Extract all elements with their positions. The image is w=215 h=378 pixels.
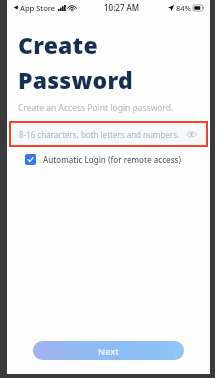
staticText: Create an Access Point login password. — [18, 102, 174, 114]
button[interactable]: 8-16 characters, both letters and number… — [11, 123, 206, 145]
staticText: Create — [18, 29, 98, 60]
button[interactable]: Next — [33, 341, 184, 360]
staticText: App Store — [20, 3, 56, 13]
staticText: Password — [18, 64, 133, 95]
staticText: Automatic Login (for remote access) — [43, 154, 181, 165]
button[interactable]: Show password — [184, 127, 198, 141]
staticText: 84% — [176, 3, 191, 13]
staticText: Next — [98, 345, 119, 357]
staticText: 10:27 AM — [104, 2, 140, 13]
staticText: 8-16 characters, both letters and number… — [19, 129, 180, 140]
button[interactable]: Automatic Login (for remote access) — [25, 154, 181, 165]
